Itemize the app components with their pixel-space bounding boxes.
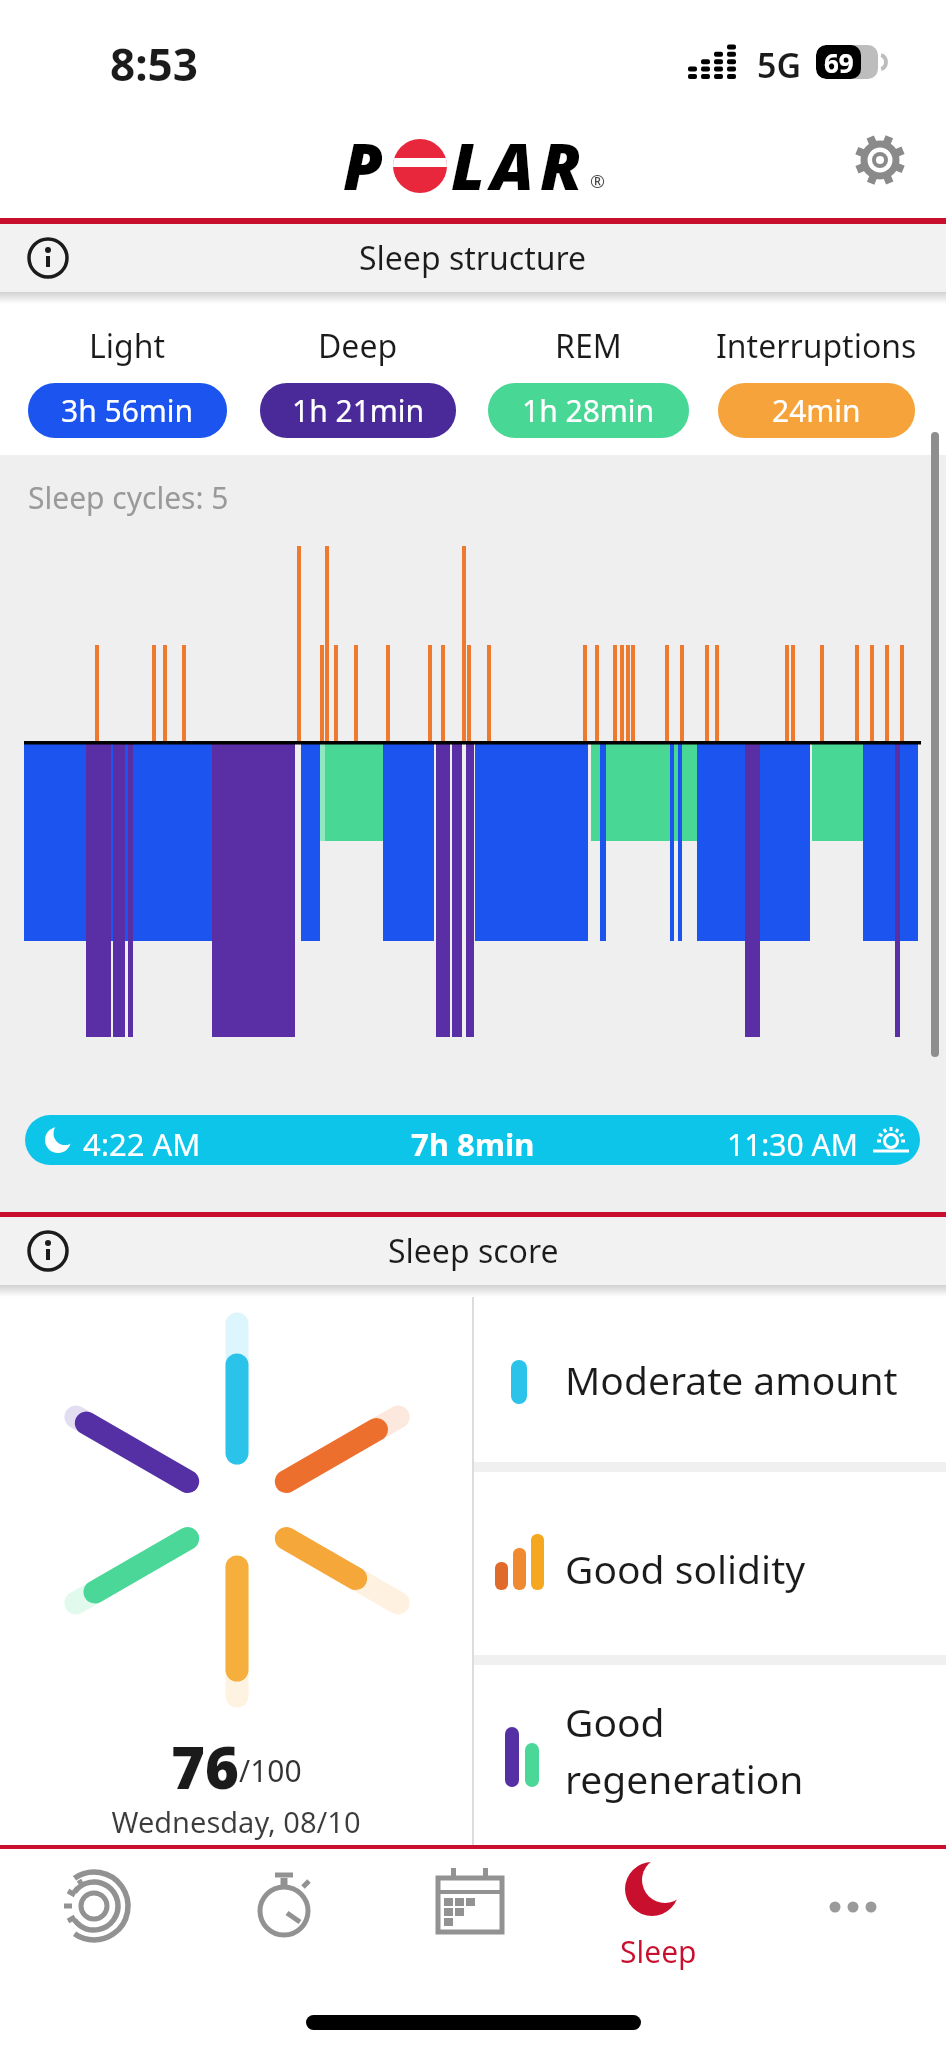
staticText: Sleep structure [359,236,587,280]
button[interactable] [852,132,908,188]
staticText: 5G [757,42,802,88]
button[interactable]: 1h 28min [488,383,689,438]
staticText: Moderate amount [565,1353,898,1406]
button[interactable] [44,1856,144,1956]
staticText: 24min [772,390,861,431]
staticText: Good solidity [565,1542,806,1595]
staticText: Sleep cycles: 5 [28,477,229,518]
staticText: Interruptions [716,324,917,368]
button[interactable]: Sleep [602,1851,714,1971]
button[interactable]: 4:22 AM [25,1115,920,1165]
staticText: Deep [318,324,398,368]
button[interactable] [420,1856,520,1956]
staticText: 69 [824,45,854,79]
staticText: Wednesday, 08/10 [0,1802,472,1841]
staticText: 7h 8min [411,1123,535,1165]
button[interactable]: Moderate amount [474,1297,946,1462]
staticText: ® [590,169,605,194]
staticText: /100 [239,1750,302,1791]
button[interactable]: 3h 56min [28,383,227,438]
staticText: P [343,122,389,209]
staticText: 11:30 AM [727,1124,858,1165]
staticText: Good regeneration [565,1695,804,1805]
staticText: 3h 56min [61,390,194,431]
staticText: 1h 28min [522,390,655,431]
button[interactable]: Good regeneration [474,1665,946,1845]
button[interactable] [803,1856,903,1956]
button[interactable]: 24min [718,383,915,438]
button[interactable] [27,1230,69,1272]
staticText: REM [555,324,622,368]
staticText: Sleep [620,1931,697,1972]
button[interactable]: 1h 21min [260,383,456,438]
staticText: Light [89,324,166,368]
staticText: 8:53 [110,34,198,94]
button[interactable] [27,237,69,279]
staticText: 4:22 AM [83,1123,201,1165]
staticText: 76 [171,1727,239,1797]
staticText: 1h 21min [292,390,425,431]
button[interactable]: Good solidity [474,1472,946,1655]
button[interactable] [234,1856,334,1956]
staticText: Sleep score [388,1229,559,1273]
staticText: LAR [451,122,588,209]
